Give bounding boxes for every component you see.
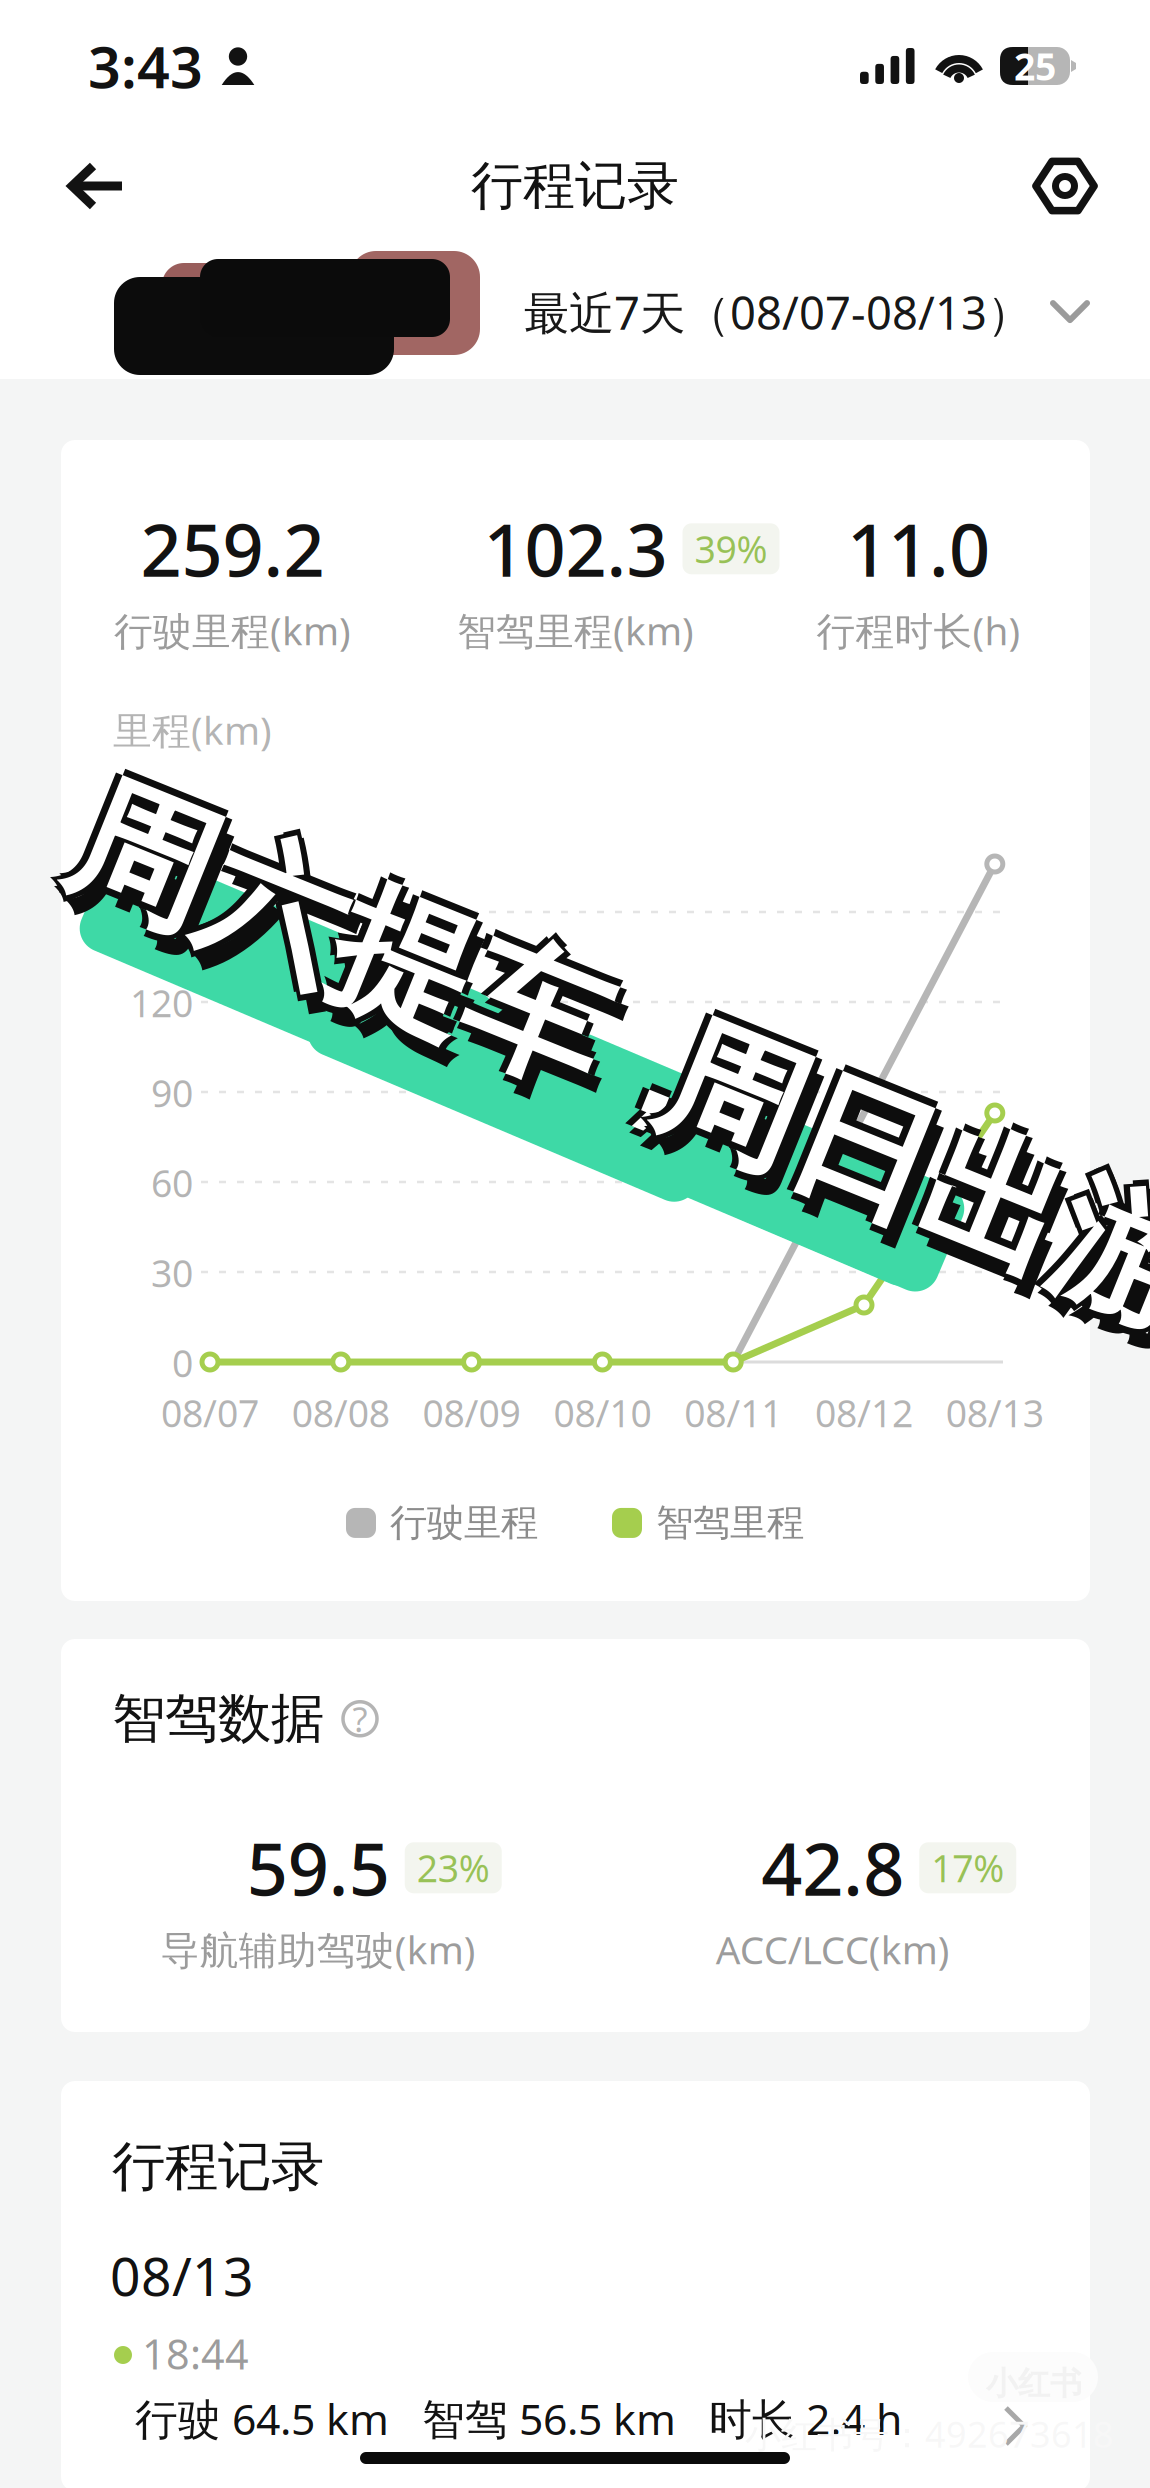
staticText: 智驾里程(km) bbox=[457, 605, 694, 656]
button[interactable]: Settings bbox=[1012, 140, 1118, 232]
staticText: 102.3 bbox=[483, 501, 667, 597]
staticText: 08/08 bbox=[292, 1388, 390, 1438]
staticText: 行程时长(h) bbox=[816, 605, 1020, 656]
button[interactable]: Back bbox=[44, 142, 150, 230]
staticText: 最近7天（08/07-08/13） bbox=[524, 282, 1032, 342]
staticText: ACC/LCC(km) bbox=[716, 1924, 950, 1975]
staticText: 周六提车， bbox=[125, 767, 830, 941]
staticText: 周日出游 bbox=[700, 999, 1150, 1173]
staticText: 周六提车， bbox=[110, 752, 815, 926]
staticText: 周六提车， bbox=[110, 759, 815, 933]
staticText: 智驾数据 bbox=[112, 1686, 324, 1751]
staticText: 30 bbox=[151, 1248, 193, 1298]
staticText: 周六提车， bbox=[110, 745, 815, 919]
staticText: 周日出游 bbox=[700, 985, 1150, 1159]
staticText: 120 bbox=[130, 978, 193, 1028]
staticText: 行程记录 bbox=[471, 154, 679, 218]
staticText: 行驶里程 bbox=[390, 1500, 538, 1546]
staticText: 90 bbox=[151, 1068, 193, 1118]
staticText: 08/12 bbox=[815, 1388, 913, 1438]
staticText: 周六提车， bbox=[103, 752, 808, 926]
staticText: 08/10 bbox=[553, 1388, 651, 1438]
staticText: 智驾里程 bbox=[656, 1500, 804, 1546]
staticText: 08/07 bbox=[161, 1388, 259, 1438]
staticText: 08/09 bbox=[423, 1388, 521, 1438]
staticText: 小红书号：492673618 bbox=[745, 2410, 1114, 2458]
staticText: 39% bbox=[694, 524, 767, 574]
staticText: 08/13 bbox=[110, 2240, 254, 2311]
staticText: 导航辅助驾驶(km) bbox=[161, 1924, 476, 1975]
staticText: 行程记录 bbox=[112, 2134, 324, 2199]
staticText: 23% bbox=[417, 1843, 490, 1893]
staticText: 周日出游 bbox=[715, 1007, 1150, 1181]
staticText: 18:44 bbox=[142, 2326, 249, 2381]
staticText: 11.0 bbox=[847, 501, 990, 597]
staticText: 周日出游 bbox=[700, 992, 1150, 1166]
button[interactable]: 18:44 bbox=[114, 2326, 1034, 2446]
staticText: 25 bbox=[1014, 41, 1056, 91]
staticText: 行驶里程(km) bbox=[114, 605, 351, 656]
button[interactable]: 最近7天（08/07-08/13） bbox=[524, 266, 1090, 358]
staticText: 0 bbox=[172, 1338, 193, 1388]
staticText: 周六提车， bbox=[117, 752, 822, 926]
staticText: 3:43 bbox=[88, 28, 203, 104]
button[interactable]: Help bbox=[338, 1697, 382, 1741]
staticText: 42.8 bbox=[761, 1820, 904, 1916]
staticText: 周日出游 bbox=[693, 992, 1150, 1166]
staticText: 行驶 64.5 km 智驾 56.5 km 时长 2.4 h bbox=[135, 2390, 902, 2447]
staticText: 周日出游 bbox=[707, 992, 1150, 1166]
staticText: 60 bbox=[151, 1158, 193, 1208]
staticText: 08/11 bbox=[684, 1388, 782, 1438]
staticText: 小红书 bbox=[986, 2364, 1082, 2403]
staticText: 259.2 bbox=[140, 501, 324, 597]
staticText: 59.5 bbox=[247, 1820, 390, 1916]
staticText: 里程(km) bbox=[113, 704, 272, 755]
staticText: 08/13 bbox=[946, 1388, 1044, 1438]
staticText: ? bbox=[352, 1696, 367, 1742]
staticText: 17% bbox=[931, 1843, 1004, 1893]
